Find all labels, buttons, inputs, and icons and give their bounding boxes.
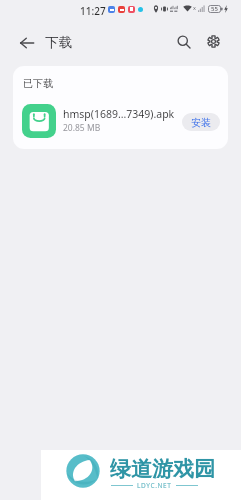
staticText: 20.85 MB — [63, 122, 101, 134]
staticText: x — [193, 4, 196, 11]
staticText: 绿道游戏园 — [110, 456, 215, 482]
staticText: 55 — [211, 5, 218, 13]
button[interactable]: Settings — [200, 28, 227, 55]
staticText: 11:27 — [80, 4, 106, 18]
button[interactable]: 安装 — [182, 113, 220, 131]
staticText: LDYC.NET — [137, 481, 172, 490]
button[interactable]: Search — [170, 28, 197, 55]
staticText: hmsp(1689…7349).apk — [63, 107, 175, 121]
staticText: 下载 — [45, 34, 72, 51]
staticText: 安装 — [191, 116, 211, 129]
button[interactable]: Back — [13, 29, 40, 56]
button[interactable]: hmsp(1689…7349).apk — [13, 96, 228, 146]
staticText: 已下载 — [23, 77, 53, 90]
